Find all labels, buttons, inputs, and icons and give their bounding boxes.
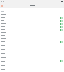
button[interactable] [0, 51, 64, 55]
button[interactable] [0, 34, 64, 37]
button[interactable]: Toggle [60, 29, 63, 31]
button[interactable] [0, 43, 64, 47]
button[interactable]: Toggle [60, 23, 63, 25]
button[interactable] [0, 10, 64, 13]
button[interactable]: Toggle [0, 19, 64, 22]
button[interactable] [0, 55, 64, 59]
button[interactable] [0, 13, 64, 16]
button[interactable] [0, 63, 64, 67]
button[interactable]: Toggle [0, 28, 64, 31]
button[interactable]: Toggle [0, 40, 64, 43]
button[interactable]: Toggle [60, 17, 63, 19]
button[interactable]: Toggle [60, 20, 63, 22]
button[interactable] [0, 47, 64, 51]
button[interactable]: Toggle [60, 41, 63, 43]
button[interactable] [0, 37, 64, 40]
button[interactable]: Toggle [60, 26, 63, 28]
button[interactable]: Toggle [60, 60, 63, 62]
button[interactable] [0, 67, 64, 71]
button[interactable]: Toggle [0, 22, 64, 25]
button[interactable]: Toggle [0, 25, 64, 28]
button[interactable]: Toggle [0, 16, 64, 19]
button[interactable] [0, 31, 64, 34]
button[interactable]: Toggle [0, 59, 64, 63]
